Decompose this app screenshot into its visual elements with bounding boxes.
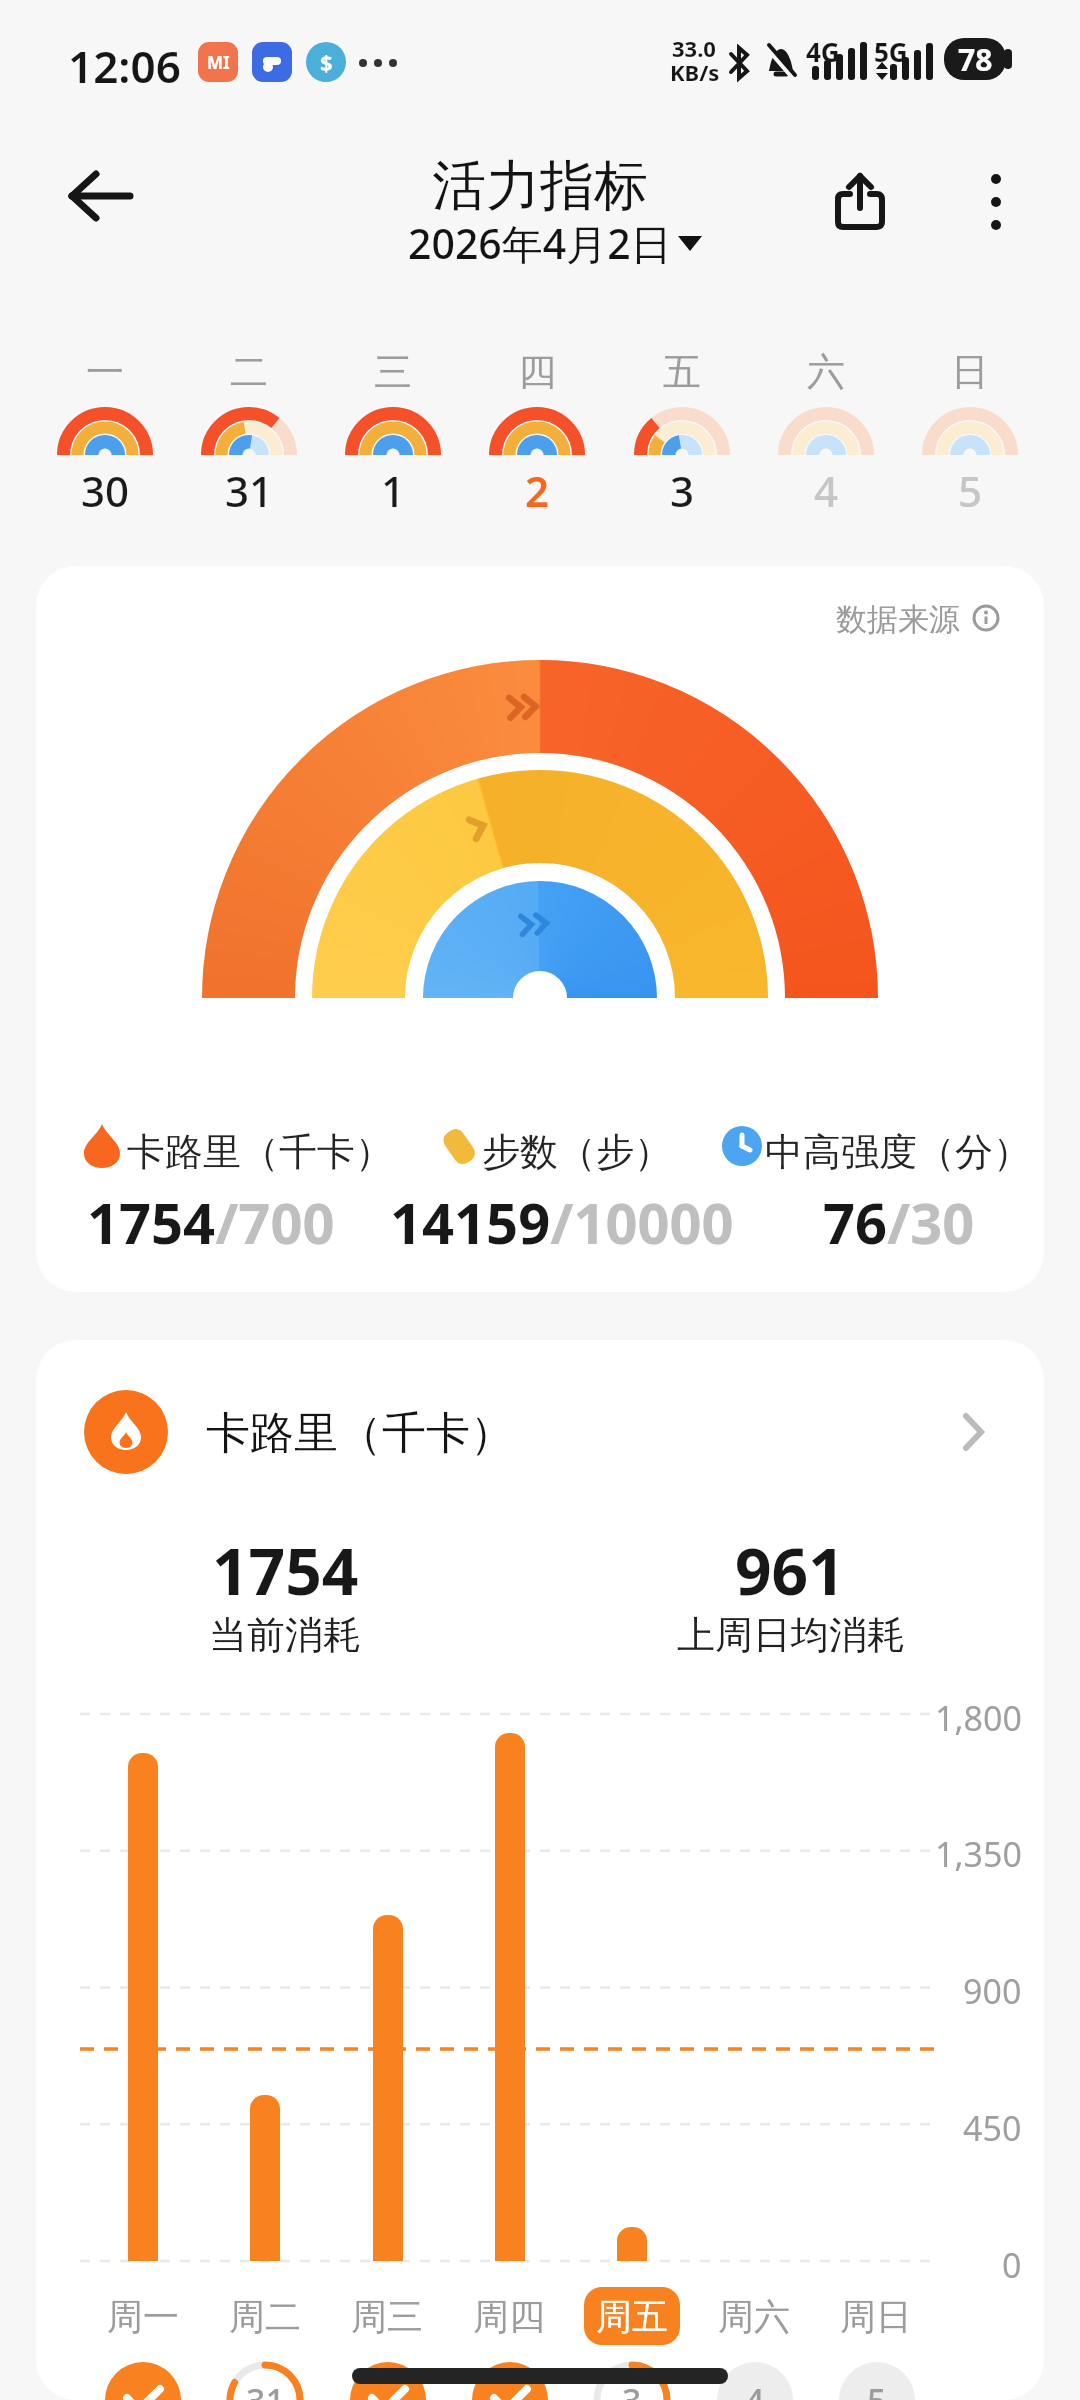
staticText: 14159/10000	[390, 1184, 734, 1260]
staticText: 卡路里（千卡）	[206, 1406, 514, 1461]
staticText: 4	[745, 2378, 765, 2400]
staticText: 31	[246, 2378, 285, 2400]
button[interactable]: 周日	[821, 2290, 931, 2342]
button[interactable]	[477, 340, 597, 520]
button[interactable]	[766, 340, 886, 520]
staticText: 卡路里（千卡）	[127, 1128, 393, 1176]
staticText: 5G	[874, 34, 908, 69]
button[interactable]	[910, 340, 1030, 520]
staticText: 2026年4月2日	[408, 215, 672, 271]
staticText: 12:06	[68, 36, 181, 96]
button[interactable]: 周五	[584, 2287, 680, 2345]
staticText: 31	[225, 462, 274, 512]
staticText: 1754/700	[87, 1184, 335, 1260]
staticText: 步数（步）	[482, 1128, 672, 1176]
staticText: 900	[963, 1968, 1022, 2008]
button[interactable]: 周二	[210, 2290, 320, 2342]
staticText: 30	[81, 462, 130, 512]
button[interactable]: 周四	[454, 2290, 564, 2342]
staticText: 周二	[229, 2294, 301, 2339]
button[interactable]	[189, 340, 309, 520]
button[interactable]	[36, 1372, 1044, 1492]
staticText: 4G	[806, 34, 840, 69]
staticText: 三	[374, 348, 412, 392]
staticText: 数据来源	[836, 600, 960, 639]
staticText: 5	[867, 2378, 887, 2400]
staticText: 一	[86, 348, 124, 392]
button[interactable]	[622, 340, 742, 520]
staticText: 3	[622, 2378, 642, 2400]
button[interactable]	[56, 156, 146, 236]
staticText: 周一	[107, 2294, 179, 2339]
staticText: 周五	[596, 2294, 668, 2339]
button[interactable]	[700, 596, 1010, 642]
staticText: 1754	[212, 1527, 359, 1607]
staticText: $	[320, 47, 333, 77]
button[interactable]: 2026年4月2日	[330, 212, 750, 274]
staticText: 1,350	[935, 1831, 1022, 1871]
staticText: 上周日均消耗	[677, 1611, 905, 1659]
staticText: 0	[1002, 2242, 1022, 2282]
button[interactable]	[45, 340, 165, 520]
staticText: 活力指标	[432, 152, 648, 216]
staticText: 五	[663, 348, 701, 392]
staticText: 78	[958, 39, 993, 80]
button[interactable]	[822, 164, 898, 240]
staticText: 中高强度（分）	[765, 1128, 1031, 1176]
staticText: KB/s	[670, 57, 720, 87]
staticText: 4	[814, 462, 839, 512]
staticText: 76/30	[823, 1184, 975, 1250]
staticText: 3	[670, 462, 695, 512]
button[interactable]: 周三	[332, 2290, 442, 2342]
staticText: 33.0	[672, 33, 716, 63]
staticText: 961	[735, 1527, 845, 1607]
button[interactable]: 周六	[699, 2290, 809, 2342]
staticText: 5	[958, 462, 983, 512]
staticText: MI	[207, 51, 230, 74]
staticText: 周三	[351, 2294, 423, 2339]
staticText: 当前消耗	[209, 1611, 361, 1659]
staticText: 六	[807, 348, 845, 392]
button[interactable]: 周一	[88, 2290, 198, 2342]
staticText: 周日	[840, 2294, 912, 2339]
staticText: 周四	[473, 2294, 545, 2339]
button[interactable]	[958, 164, 1034, 240]
staticText: 日	[951, 348, 989, 392]
staticText: 二	[230, 348, 268, 392]
staticText: 四	[518, 348, 556, 392]
button[interactable]	[333, 340, 453, 520]
staticText: 周六	[718, 2294, 790, 2339]
staticText: 450	[963, 2105, 1022, 2145]
staticText: 1,800	[935, 1695, 1022, 1735]
staticText: 1	[381, 462, 406, 512]
staticText: 2	[525, 462, 550, 512]
